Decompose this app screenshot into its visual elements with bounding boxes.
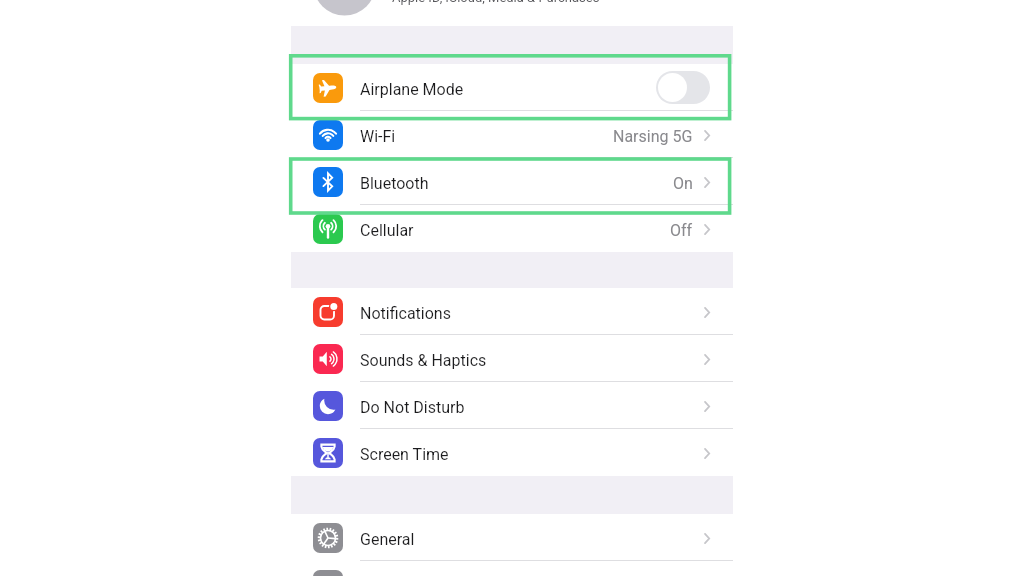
button[interactable]: Airplane Mode: [291, 64, 733, 111]
staticText: General: [360, 530, 415, 549]
staticText: Airplane Mode: [360, 80, 464, 99]
button[interactable]: Wi-Fi: [291, 111, 733, 158]
button[interactable]: Notifications: [291, 288, 733, 335]
staticText: Apple ID, iCloud, Media & Purchases: [392, 0, 600, 5]
staticText: On: [673, 174, 693, 193]
button[interactable]: Sounds & Haptics: [291, 335, 733, 382]
staticText: Do Not Disturb: [360, 398, 465, 417]
button[interactable]: General: [291, 514, 733, 561]
staticText: Notifications: [360, 304, 451, 323]
staticText: Bluetooth: [360, 174, 429, 193]
staticText: Off: [670, 221, 693, 240]
button[interactable]: Airplane Mode toggle: [656, 71, 710, 104]
staticText: Sounds & Haptics: [360, 351, 487, 370]
button[interactable]: Screen Time: [291, 429, 733, 476]
button[interactable]: Control Center: [291, 561, 733, 576]
staticText: Cellular: [360, 221, 414, 240]
button[interactable]: Cellular: [291, 205, 733, 252]
staticText: Screen Time: [360, 445, 449, 464]
staticText: Narsing 5G: [613, 127, 693, 146]
button[interactable]: Bluetooth: [291, 158, 733, 205]
staticText: Wi-Fi: [360, 127, 396, 146]
button[interactable]: Do Not Disturb: [291, 382, 733, 429]
